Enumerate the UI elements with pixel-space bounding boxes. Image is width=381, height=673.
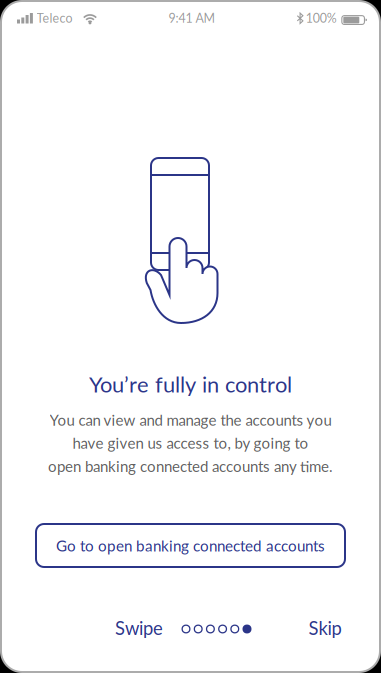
- button[interactable]: Swipe: [110, 617, 168, 639]
- staticText: Teleco: [36, 11, 72, 25]
- staticText: Go to open banking connected accounts: [56, 536, 325, 555]
- staticText: have given us access to, by going to: [72, 434, 308, 452]
- staticText: Swipe: [115, 617, 163, 639]
- staticText: Skip: [308, 617, 341, 639]
- button[interactable]: Go to open banking connected accounts: [36, 524, 345, 567]
- button[interactable]: Skip: [305, 617, 345, 639]
- staticText: 100%: [306, 11, 337, 25]
- staticText: You can view and manage the accounts you: [49, 411, 331, 429]
- staticText: 9:41 AM: [168, 11, 215, 25]
- staticText: You’re fully in control: [89, 371, 292, 397]
- staticText: open banking connected accounts any time…: [48, 457, 333, 475]
